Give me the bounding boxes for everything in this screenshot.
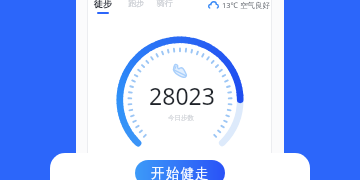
button[interactable]: 跑步 (128, 0, 144, 8)
button[interactable]: 骑行 (157, 0, 173, 8)
staticText: 徒步 (94, 0, 112, 9)
button[interactable]: 13℃ 空气良好 (208, 0, 270, 10)
button[interactable]: 开始健走 (135, 160, 225, 180)
staticText: 13℃ 空气良好 (222, 0, 270, 10)
staticText: 骑行 (157, 0, 173, 8)
staticText: 开始健走 (151, 165, 210, 180)
staticText: 今日步数 (81, 114, 281, 122)
staticText: 跑步 (128, 0, 144, 8)
staticText: 28023 (82, 80, 282, 111)
button[interactable]: 徒步 (94, 0, 112, 14)
